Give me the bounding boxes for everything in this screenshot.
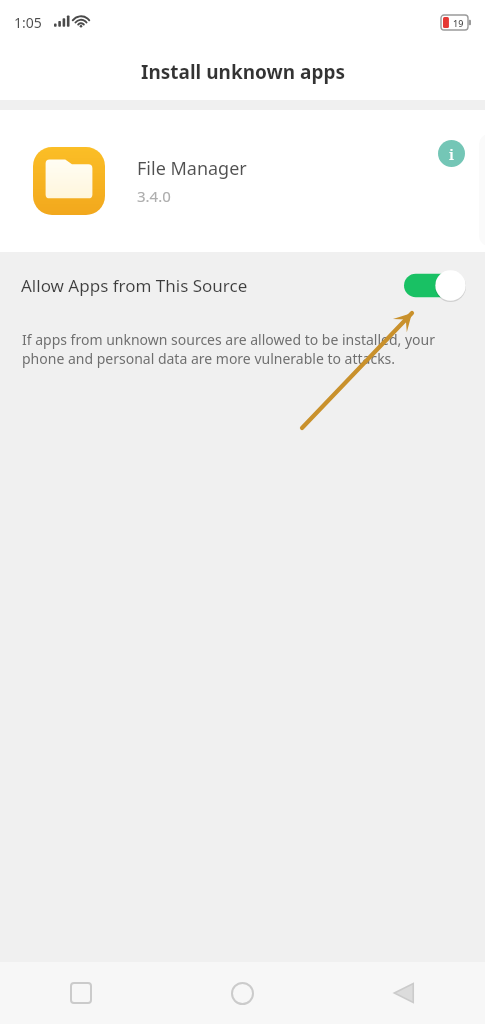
button[interactable]: Back xyxy=(323,962,485,1024)
staticText: i xyxy=(449,144,454,164)
staticText: If apps from unknown sources are allowed… xyxy=(22,330,445,368)
button[interactable]: App info xyxy=(438,140,465,167)
staticText: Install unknown apps xyxy=(141,59,345,85)
button[interactable]: Recent apps xyxy=(0,962,161,1024)
staticText: 3.4.0 xyxy=(137,186,171,206)
button[interactable]: File Manager xyxy=(0,110,485,252)
staticText: 19 xyxy=(453,17,464,29)
button[interactable]: Allow Apps from This Source xyxy=(0,252,485,318)
button[interactable]: Home xyxy=(161,962,323,1024)
staticText: Allow Apps from This Source xyxy=(21,274,404,297)
staticText: File Manager xyxy=(137,156,247,181)
staticText: 1:05 xyxy=(14,13,42,32)
